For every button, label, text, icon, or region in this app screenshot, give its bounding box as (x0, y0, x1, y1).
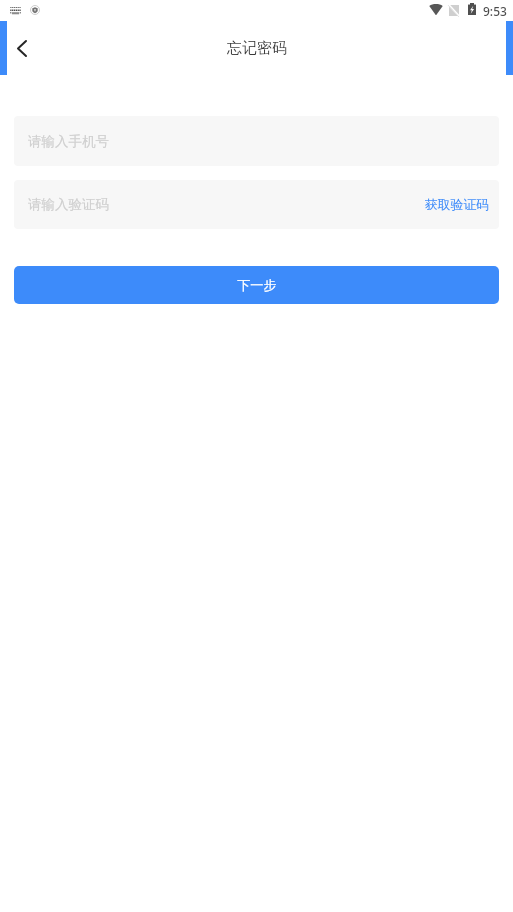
staticText: 获取验证码 (425, 197, 489, 213)
staticText: 忘记密码 (227, 39, 287, 58)
button[interactable]: Back (7, 21, 40, 75)
button[interactable]: 请输入验证码 (14, 180, 415, 229)
staticText: 请输入验证码 (28, 196, 109, 213)
button[interactable]: 下一步 (14, 266, 499, 304)
button[interactable]: 请输入手机号 (14, 116, 499, 166)
staticText: 9:53 (483, 3, 507, 19)
button[interactable]: 获取验证码 (415, 180, 499, 229)
staticText: 下一步 (237, 277, 277, 294)
staticText: 请输入手机号 (28, 133, 109, 150)
